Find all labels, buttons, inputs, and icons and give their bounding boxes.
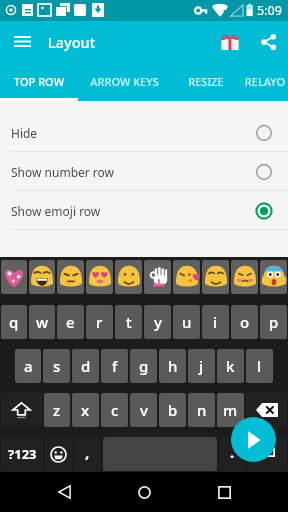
button[interactable]: Backspace <box>246 393 287 427</box>
button[interactable]: ARROW KEYS <box>78 62 170 101</box>
button[interactable]: RELAYOUT <box>242 62 288 101</box>
button[interactable]: i <box>202 305 229 339</box>
staticText: ARROW KEYS <box>90 74 159 89</box>
button[interactable]: d <box>72 349 99 383</box>
button[interactable]: t <box>115 305 142 339</box>
button[interactable]: , <box>74 437 101 471</box>
button[interactable]: c <box>101 393 128 427</box>
button[interactable]: TOP ROW <box>0 62 78 101</box>
staticText: , <box>85 442 90 462</box>
button[interactable]: Home <box>114 472 174 512</box>
staticText: Layout <box>48 32 96 52</box>
button[interactable]: Show number row <box>0 152 288 191</box>
staticText: u <box>182 312 192 332</box>
staticText: Hide <box>11 125 38 141</box>
button[interactable]: Emoji 9 <box>260 260 287 294</box>
button[interactable]: f <box>101 349 128 383</box>
button[interactable]: x <box>72 393 99 427</box>
button[interactable]: s <box>43 349 70 383</box>
staticText: ?123 <box>8 445 37 463</box>
button[interactable]: Emoji 2 <box>57 260 84 294</box>
button[interactable]: RESIZE <box>170 62 242 101</box>
button[interactable]: k <box>217 349 244 383</box>
staticText: Show emoji row <box>11 203 101 219</box>
staticText: g <box>139 356 149 376</box>
staticText: z <box>53 400 61 420</box>
button[interactable]: w <box>29 305 55 339</box>
staticText: k <box>226 356 235 376</box>
staticText: RELAYOUT <box>242 74 288 89</box>
button[interactable]: Emoji 5 <box>144 260 171 294</box>
button[interactable]: Emoji 7 <box>202 260 229 294</box>
button[interactable]: o <box>231 305 258 339</box>
staticText: . <box>230 442 235 462</box>
staticText: a <box>24 356 33 376</box>
button[interactable]: Gift <box>212 21 248 62</box>
staticText: m <box>223 400 238 420</box>
button[interactable]: Back <box>34 472 94 512</box>
staticText: o <box>240 312 250 332</box>
staticText: 5:09 <box>257 2 282 19</box>
staticText: v <box>140 400 148 420</box>
button[interactable]: Emoji 3 <box>86 260 113 294</box>
button[interactable]: Emoji 8 <box>231 260 258 294</box>
staticText: s <box>53 356 61 376</box>
staticText: RESIZE <box>188 74 224 89</box>
button[interactable]: Recent apps <box>194 472 254 512</box>
staticText: c <box>111 400 119 420</box>
button[interactable]: ?123 <box>1 437 43 471</box>
staticText: r <box>96 312 103 332</box>
staticText: l <box>257 356 262 376</box>
staticText: TOP ROW <box>14 74 64 89</box>
button[interactable]: p <box>260 305 287 339</box>
staticText: d <box>81 356 91 376</box>
staticText: w <box>36 312 49 332</box>
button[interactable]: Play <box>231 417 276 462</box>
button[interactable]: v <box>130 393 157 427</box>
button[interactable]: Emoji 1 <box>29 260 55 294</box>
button[interactable]: Shift <box>1 393 42 427</box>
button[interactable]: m <box>217 393 244 427</box>
button[interactable]: Open navigation menu <box>0 21 44 62</box>
button[interactable]: Show emoji row <box>0 191 288 230</box>
button[interactable]: Share <box>248 21 288 62</box>
button[interactable]: Hide <box>0 113 288 152</box>
button[interactable]: u <box>173 305 200 339</box>
button[interactable]: l <box>246 349 273 383</box>
button[interactable]: a <box>15 349 41 383</box>
button[interactable]: h <box>159 349 186 383</box>
button[interactable]: r <box>86 305 113 339</box>
button[interactable]: n <box>188 393 215 427</box>
button[interactable]: e <box>57 305 84 339</box>
staticText: q <box>9 312 19 332</box>
button[interactable]: b <box>159 393 186 427</box>
staticText: t <box>126 312 132 332</box>
button[interactable]: g <box>130 349 157 383</box>
staticText: x <box>81 400 90 420</box>
button[interactable]: Emoji 0 <box>1 260 27 294</box>
button[interactable]: q <box>1 305 27 339</box>
staticText: p <box>269 312 279 332</box>
button[interactable]: Enter <box>248 437 287 471</box>
button[interactable]: . <box>219 437 246 471</box>
button[interactable]: Emoji 4 <box>115 260 142 294</box>
button[interactable]: j <box>188 349 215 383</box>
staticText: Show number row <box>11 164 115 180</box>
staticText: y <box>154 312 162 332</box>
button[interactable]: Emoji 6 <box>173 260 200 294</box>
button[interactable]: y <box>144 305 171 339</box>
staticText: j <box>199 356 204 376</box>
staticText: f <box>112 356 118 376</box>
staticText: h <box>168 356 178 376</box>
button[interactable]: z <box>44 393 70 427</box>
button[interactable]: Emoji keyboard <box>45 437 72 471</box>
staticText: b <box>168 400 178 420</box>
staticText: i <box>213 312 218 332</box>
staticText: e <box>66 312 75 332</box>
staticText: n <box>197 400 207 420</box>
